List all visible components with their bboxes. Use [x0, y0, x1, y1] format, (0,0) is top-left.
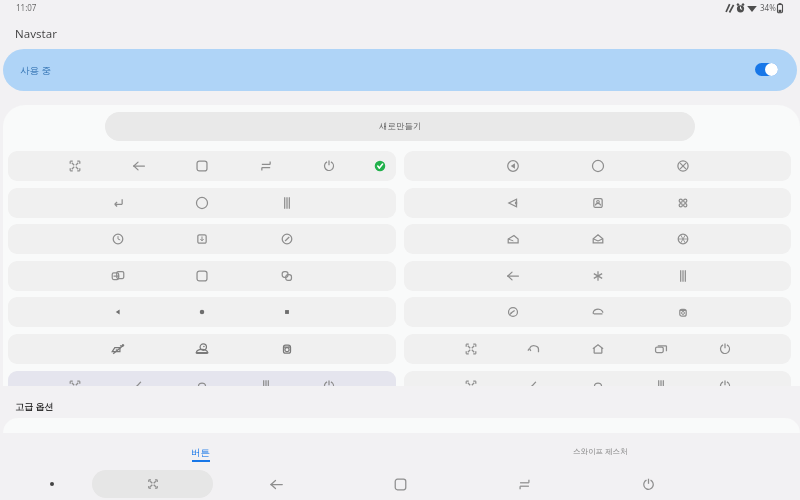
button[interactable]: Power [634, 470, 662, 498]
button[interactable]: fs [404, 371, 791, 386]
button[interactable]: home2 [588, 376, 608, 386]
button[interactable]: copy [108, 266, 128, 286]
button[interactable]: bars [256, 376, 276, 386]
button[interactable]: diamond [503, 193, 523, 213]
button[interactable]: bars [651, 376, 671, 386]
button[interactable]: diamond [404, 188, 791, 218]
button[interactable]: fs [461, 339, 481, 359]
button[interactable]: tri [108, 302, 128, 322]
button[interactable]: check [370, 156, 390, 176]
button[interactable]: contact [588, 193, 608, 213]
button[interactable]: rocket [8, 334, 396, 364]
button[interactable]: back [129, 156, 149, 176]
staticText: 스와이프 제스처 [573, 446, 628, 456]
button[interactable]: fs [65, 156, 85, 176]
button[interactable]: chev [524, 376, 544, 386]
button[interactable]: enter [8, 188, 396, 218]
button[interactable]: fs [8, 151, 396, 181]
button[interactable]: square [192, 156, 212, 176]
button[interactable]: cam [673, 302, 693, 322]
button[interactable]: sq [277, 302, 297, 322]
staticText: 버튼 [191, 447, 210, 459]
button[interactable]: home2 [192, 376, 212, 386]
button[interactable]: power [319, 376, 339, 386]
button[interactable]: wheel [673, 229, 693, 249]
button[interactable]: cclock [8, 224, 396, 254]
button[interactable]: star [588, 266, 608, 286]
button[interactable]: Switch [510, 470, 538, 498]
button[interactable]: fs [8, 371, 396, 386]
button[interactable]: home [588, 339, 608, 359]
button[interactable]: compass [277, 229, 297, 249]
staticText: 사용 중 [20, 64, 51, 77]
staticText: 11:07 [16, 2, 37, 13]
button[interactable]: circle [192, 193, 212, 213]
staticText: 34% [760, 2, 776, 13]
button[interactable]: hand2 [588, 302, 608, 322]
button[interactable]: cclock [108, 229, 128, 249]
button[interactable]: 사용 중 [3, 49, 797, 91]
button[interactable]: Home [386, 470, 414, 498]
button[interactable]: 스와이프 제스처 [400, 437, 800, 465]
button[interactable]: trash [277, 339, 297, 359]
button[interactable]: Back [262, 470, 290, 498]
staticText: Navstar [15, 26, 57, 42]
staticText: 고급 옵션 [15, 400, 54, 412]
button[interactable]: rocket [108, 339, 128, 359]
button[interactable]: cake2 [588, 229, 608, 249]
button[interactable]: cake1 [404, 224, 791, 254]
button[interactable]: square [192, 266, 212, 286]
button[interactable]: fs [461, 376, 481, 386]
button[interactable]: circle [588, 156, 608, 176]
button[interactable]: tri [8, 297, 396, 327]
button[interactable]: layers [277, 266, 297, 286]
button[interactable]: cake1 [503, 229, 523, 249]
button[interactable]: power [319, 156, 339, 176]
button[interactable]: Fullscreen [92, 470, 213, 498]
button[interactable]: apps [673, 193, 693, 213]
button[interactable]: power [715, 376, 735, 386]
button[interactable]: xcirc [673, 156, 693, 176]
button[interactable]: dot [192, 302, 212, 322]
button[interactable]: bars [277, 193, 297, 213]
button[interactable]: hand [192, 339, 212, 359]
button[interactable]: bird [404, 297, 791, 327]
button[interactable]: back [503, 266, 523, 286]
button[interactable]: fs [404, 334, 791, 364]
button[interactable]: bird [503, 302, 523, 322]
button[interactable]: boxdl [192, 229, 212, 249]
button[interactable]: swap [256, 156, 276, 176]
button[interactable]: cback [404, 151, 791, 181]
button[interactable]: 새로만들기 [105, 112, 695, 141]
button[interactable]: 버튼 [0, 440, 400, 468]
button[interactable]: cback [503, 156, 523, 176]
button[interactable]: copy [8, 261, 396, 291]
button[interactable]: power [715, 339, 735, 359]
button[interactable]: chev [129, 376, 149, 386]
button[interactable]: undo [524, 339, 544, 359]
staticText: 새로만들기 [379, 121, 422, 132]
button[interactable]: fs [65, 376, 85, 386]
button[interactable]: back [404, 261, 791, 291]
button[interactable]: enter [108, 193, 128, 213]
button[interactable]: bars [673, 266, 693, 286]
button[interactable]: recent [651, 339, 671, 359]
